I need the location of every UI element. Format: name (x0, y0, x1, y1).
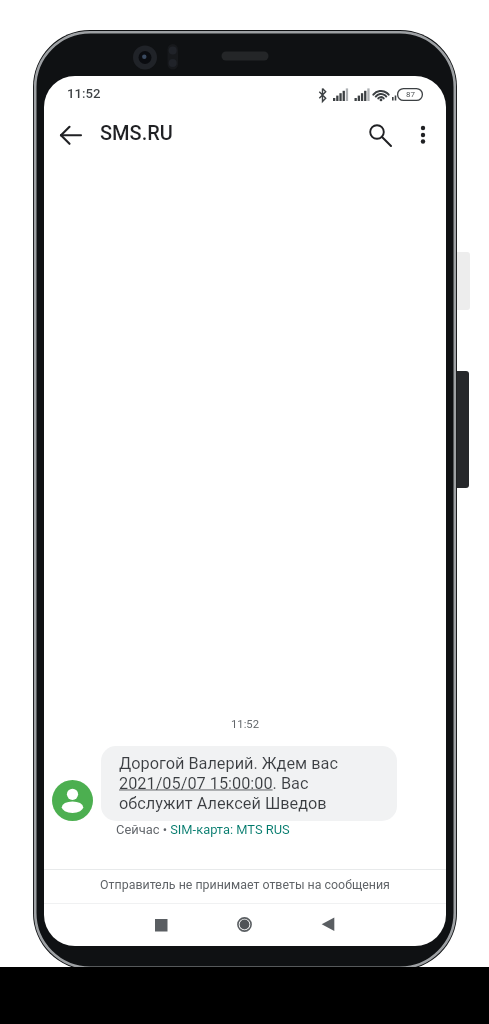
staticText: 87 (406, 90, 415, 99)
button[interactable] (230, 910, 259, 939)
staticText: Дорогой Валерий. Ждем вас 2021/05/07 15:… (119, 754, 338, 813)
staticText: Сейчас • SIM-карта: MTS RUS (116, 822, 290, 837)
button[interactable] (52, 780, 93, 821)
button[interactable]: Дорогой Валерий. Ждем вас 2021/05/07 15:… (101, 746, 397, 821)
staticText: 11:52 (67, 86, 101, 101)
button[interactable] (408, 118, 438, 150)
button[interactable] (362, 117, 394, 149)
staticText: SMS.RU (100, 121, 173, 144)
staticText: Отправитель не принимает ответы на сообщ… (44, 877, 446, 892)
button[interactable] (147, 911, 175, 939)
button[interactable] (54, 118, 88, 152)
staticText: 11:52 (44, 718, 446, 731)
button[interactable] (314, 910, 343, 939)
